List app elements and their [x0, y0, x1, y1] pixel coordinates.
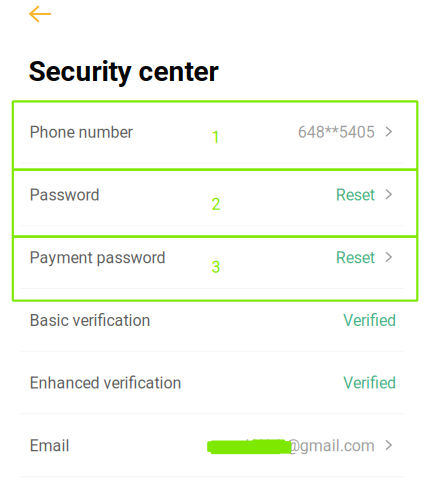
staticText: 2 — [211, 195, 220, 214]
staticText: Basic verification — [29, 311, 150, 330]
staticText: 648**5405 — [298, 123, 375, 142]
button[interactable]: Basic verification — [0, 289, 446, 352]
button[interactable]: Enhanced verification — [0, 352, 446, 414]
staticText: 1 — [211, 128, 220, 147]
staticText: Phone number — [29, 123, 132, 142]
button[interactable]: Back — [0, 0, 58, 32]
staticText: sa****th@gmail.com — [227, 436, 375, 455]
staticText: Reset — [336, 186, 375, 204]
staticText: Email — [29, 436, 69, 455]
staticText: Enhanced verification — [29, 374, 181, 393]
staticText: 3 — [211, 258, 220, 277]
button[interactable]: Phone number — [0, 101, 446, 164]
staticText: Payment password — [29, 248, 165, 267]
button[interactable]: Email — [0, 414, 446, 477]
staticText: Reset — [336, 248, 375, 267]
staticText: Security center — [28, 55, 218, 88]
staticText: Verified — [343, 374, 396, 393]
button[interactable]: Password — [0, 164, 446, 226]
staticText: Verified — [343, 311, 396, 330]
staticText: Password — [29, 186, 99, 204]
button[interactable]: Payment password — [0, 226, 446, 289]
